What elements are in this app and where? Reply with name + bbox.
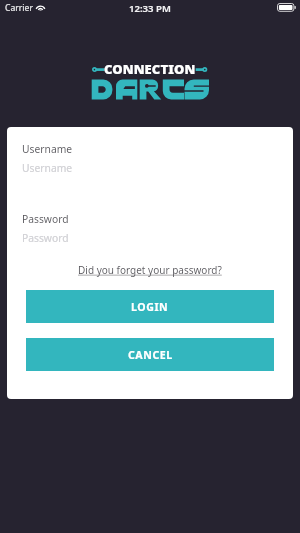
- staticText: LOGIN: [131, 300, 169, 314]
- staticText: Username: [22, 142, 73, 156]
- staticText: Password: [22, 231, 69, 245]
- staticText: Carrier: [5, 2, 33, 14]
- other: Connection Darts: [80, 60, 220, 102]
- staticText: 12:33 PM: [129, 2, 171, 15]
- staticText: CANCEL: [128, 348, 173, 362]
- staticText: CONNECTION: [104, 60, 196, 78]
- button[interactable]: Did you forget your password?: [78, 263, 222, 277]
- staticText: Username: [22, 161, 73, 175]
- staticText: Password: [22, 212, 69, 226]
- button[interactable]: LOGIN: [26, 290, 274, 323]
- button[interactable]: CANCEL: [26, 338, 274, 371]
